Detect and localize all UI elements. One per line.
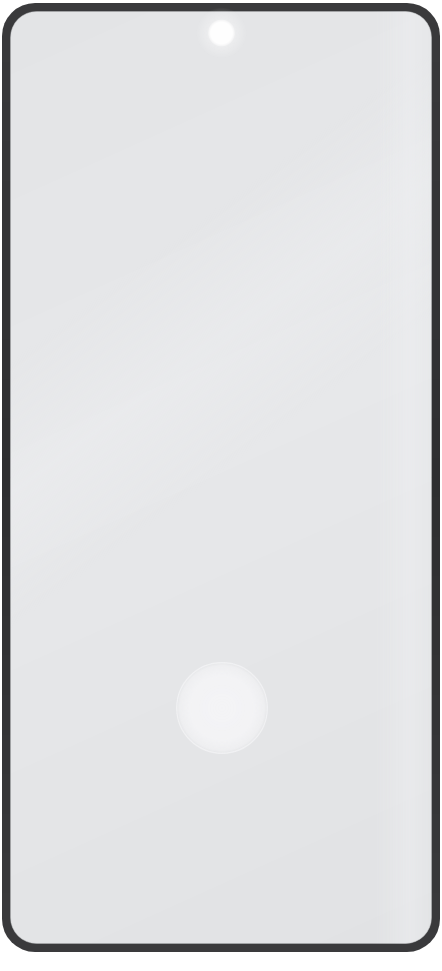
button[interactable]: Phone device preview [0,0,442,971]
